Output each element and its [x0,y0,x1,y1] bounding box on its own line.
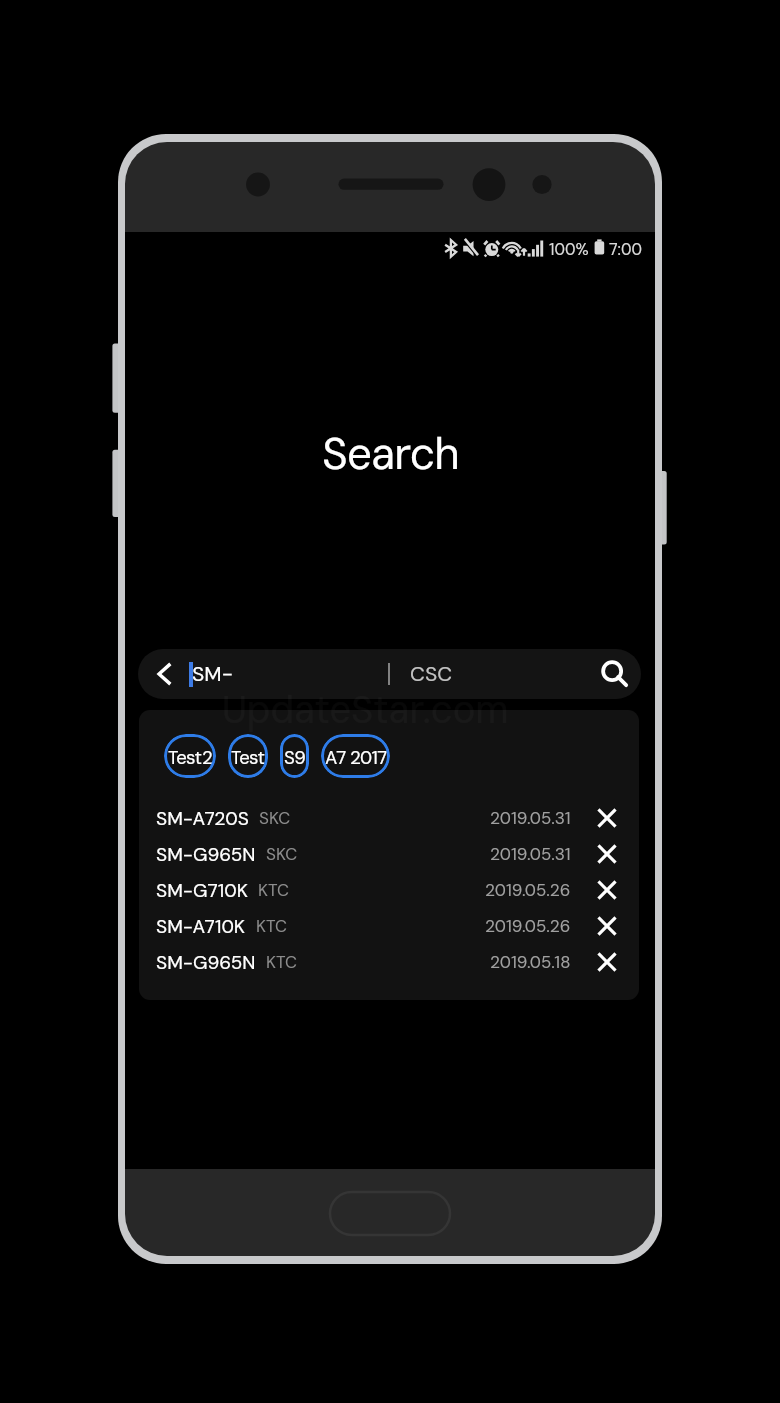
button[interactable]: SM-G710K [139,872,639,908]
staticText: Search [322,425,459,473]
staticText: SM-G710K [156,878,248,903]
button[interactable]: Remove [592,803,622,833]
staticText: 2019.05.26 [485,879,571,901]
button[interactable]: SM-G965N [139,836,639,872]
button[interactable]: Test [228,734,268,778]
staticText: CSC [410,660,453,687]
staticText: SM- [192,660,233,687]
staticText: 2019.05.18 [490,951,571,973]
staticText: A7 2017 [325,746,387,770]
button[interactable]: Remove [592,911,622,941]
staticText: SM-A710K [156,914,246,939]
button[interactable]: Remove [592,947,622,977]
button[interactable]: Back [149,659,179,689]
staticText: KTC [266,951,298,973]
button[interactable]: Remove [592,875,622,905]
staticText: 2019.05.31 [490,807,571,829]
staticText: Test [231,746,265,770]
staticText: SM-G965N [156,950,256,975]
button[interactable]: SM-G965N [139,944,639,980]
staticText: 2019.05.31 [490,843,571,865]
staticText: KTC [258,879,290,901]
staticText: Test2 [168,746,213,770]
staticText: 2019.05.26 [485,915,571,937]
staticText: 100% [549,239,589,260]
staticText: SKC [266,843,298,865]
button[interactable]: Remove [592,839,622,869]
button[interactable]: Back [138,649,641,699]
button[interactable]: SM-A720S [139,800,639,836]
staticText: 7:00 [609,239,642,260]
button[interactable]: Test2 [164,734,216,778]
button[interactable]: Search [596,655,634,693]
staticText: SM-A720S [156,806,249,831]
staticText: KTC [256,915,288,937]
staticText: SKC [259,807,291,829]
staticText: UpdateStar.com [222,685,509,734]
staticText: SM-G965N [156,842,256,867]
button[interactable]: SM-A710K [139,908,639,944]
button[interactable]: S9 [280,734,309,778]
button[interactable]: A7 2017 [321,734,390,778]
staticText: S9 [284,746,306,770]
